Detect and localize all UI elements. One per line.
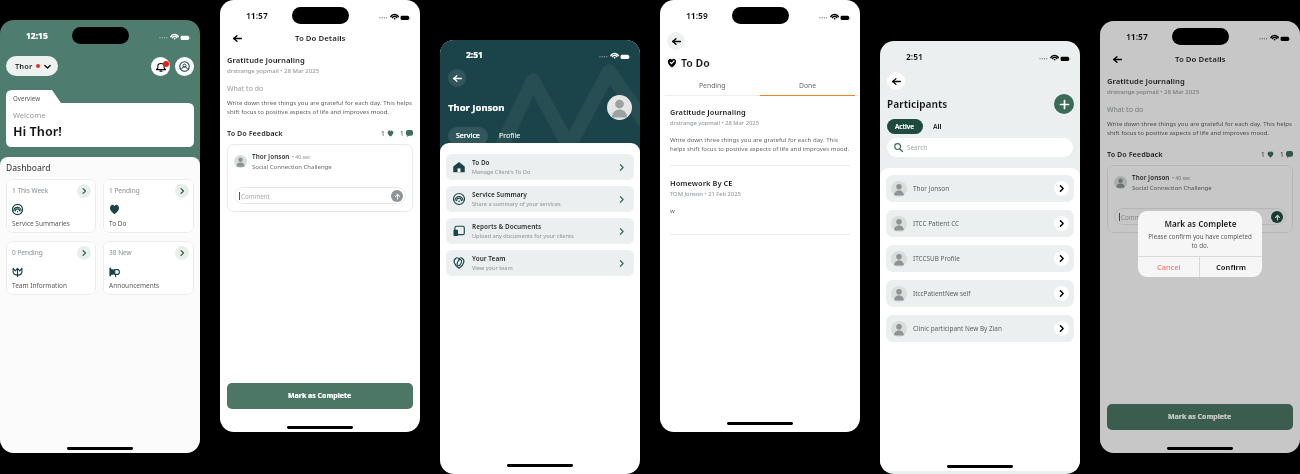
button[interactable]: Back	[1111, 53, 1124, 66]
button[interactable]: Mark as Complete	[227, 383, 413, 409]
staticText: Clinic participant New By Zian	[913, 324, 1002, 333]
button[interactable]: ITCC Patient CC	[886, 210, 1074, 237]
button[interactable]: Add participant	[1054, 94, 1074, 114]
button[interactable]: 1 Pending	[103, 179, 194, 233]
button[interactable]: Back	[887, 72, 905, 90]
staticText: To Do Details	[1175, 54, 1226, 65]
staticText: 2:51	[906, 51, 923, 63]
button[interactable]: Thor	[6, 56, 58, 76]
staticText: 1	[400, 129, 404, 138]
staticText: ItccPatientNew self	[913, 289, 971, 298]
button[interactable]: Active	[887, 119, 923, 134]
staticText: 38 New	[109, 248, 132, 257]
button[interactable]: Clinic participant New By Zian	[886, 315, 1074, 342]
button[interactable]: Pending	[665, 81, 760, 90]
button[interactable]: Profile	[175, 57, 194, 76]
staticText: Profile	[499, 131, 521, 141]
button[interactable]: 1 This Week	[6, 179, 96, 233]
staticText: What to do	[227, 84, 264, 94]
staticText: 1 This Week	[12, 186, 49, 195]
button[interactable]: All	[930, 119, 945, 134]
button[interactable]: Send comment	[1271, 211, 1283, 223]
staticText: Thor Jonson	[1132, 173, 1170, 182]
button[interactable]: Done	[760, 81, 855, 90]
staticText: 11:57	[1126, 31, 1148, 43]
button[interactable]: Service	[448, 127, 488, 145]
staticText: 1	[1280, 150, 1284, 159]
button[interactable]: To Do	[446, 154, 634, 180]
button[interactable]: Thor Jonson	[886, 175, 1074, 202]
staticText: To Do Details	[295, 33, 346, 44]
staticText: Overview	[13, 94, 40, 102]
staticText: Write down three things you are grateful…	[670, 135, 850, 153]
staticText: Participants	[887, 97, 948, 111]
staticText: Gratitude Journaling	[670, 107, 746, 117]
staticText: Pending	[699, 81, 726, 90]
staticText: Confirm	[1216, 262, 1247, 272]
staticText: w	[670, 206, 675, 214]
staticText: Done	[799, 81, 817, 90]
staticText: Announcements	[109, 281, 160, 290]
button[interactable]: Back	[448, 69, 466, 87]
staticText: Social Connection Challenge	[252, 163, 332, 171]
button[interactable]: ITCCSUB Profile	[886, 245, 1074, 272]
button[interactable]: Profile	[495, 127, 525, 145]
staticText: Dashboard	[6, 162, 51, 174]
staticText: Service	[456, 131, 480, 141]
staticText: Write down three things you are grateful…	[227, 98, 413, 116]
button[interactable]: Back	[667, 32, 685, 50]
button[interactable]: 0 Pending	[6, 241, 96, 295]
staticText: Share a summary of your services	[472, 200, 561, 208]
staticText: drstrange yopmail • 28 Mar 2025	[1107, 88, 1200, 96]
button[interactable]: Your Team	[446, 250, 634, 276]
button[interactable]: Send comment	[391, 190, 403, 202]
staticText: All	[933, 122, 942, 131]
button[interactable]: ItccPatientNew self	[886, 280, 1074, 307]
staticText: Gratitude Journaling	[1107, 76, 1185, 86]
staticText: Upload any documents for your clients	[472, 232, 574, 240]
button[interactable]: Confirm	[1200, 257, 1262, 277]
staticText: Team Information	[12, 281, 68, 290]
staticText: 1	[381, 129, 385, 138]
staticText: Your Team	[472, 254, 506, 263]
staticText: Social Connection Challenge	[1132, 184, 1212, 192]
staticText: 12:15	[26, 30, 48, 42]
staticText: What to do	[1107, 105, 1144, 115]
staticText: To Do	[681, 56, 710, 70]
staticText: Thor Jonson	[252, 152, 290, 161]
staticText: Service Summary	[472, 190, 527, 199]
button[interactable]: Reports & Documents	[446, 218, 634, 244]
button[interactable]: Notifications	[151, 57, 170, 76]
staticText: Please confirm you have completed to do.	[1146, 232, 1254, 249]
staticText: Reports & Documents	[472, 222, 542, 231]
staticText: Service Summaries	[12, 219, 70, 228]
button[interactable]: Mark as Complete	[1107, 404, 1293, 430]
staticText: ITCC Patient CC	[913, 219, 960, 228]
staticText: Write down three things you are grateful…	[1107, 119, 1293, 137]
staticText: Thor Jonson	[913, 184, 950, 193]
button[interactable]: Cancel	[1138, 257, 1199, 277]
staticText: Mark as Complete	[288, 391, 352, 401]
staticText: Active	[895, 122, 915, 131]
staticText: Gratitude Journaling	[227, 55, 305, 65]
staticText: To Do Feedback	[227, 128, 283, 138]
button[interactable]: Search	[887, 138, 1073, 157]
staticText: 11:57	[246, 10, 268, 22]
staticText: To Do	[472, 158, 490, 167]
staticText: 0 Pending	[12, 248, 43, 257]
staticText: Comment	[241, 192, 270, 200]
staticText: Mark as Complete	[1168, 412, 1232, 422]
button[interactable]: 38 New	[103, 241, 194, 295]
staticText: • 40 sec	[1172, 174, 1191, 181]
staticText: 2:51	[466, 49, 483, 61]
staticText: Welcome	[13, 110, 46, 120]
staticText: Hi Thor!	[13, 123, 62, 140]
staticText: To Do	[109, 219, 127, 228]
staticText: 11:59	[686, 10, 708, 22]
button[interactable]: Back	[231, 32, 244, 45]
staticText: ITCCSUB Profile	[913, 254, 960, 263]
staticText: Comment	[1121, 213, 1150, 221]
staticText: 1 Pending	[109, 186, 140, 195]
staticText: Homework By CE	[670, 178, 733, 188]
button[interactable]: Service Summary	[446, 186, 634, 212]
